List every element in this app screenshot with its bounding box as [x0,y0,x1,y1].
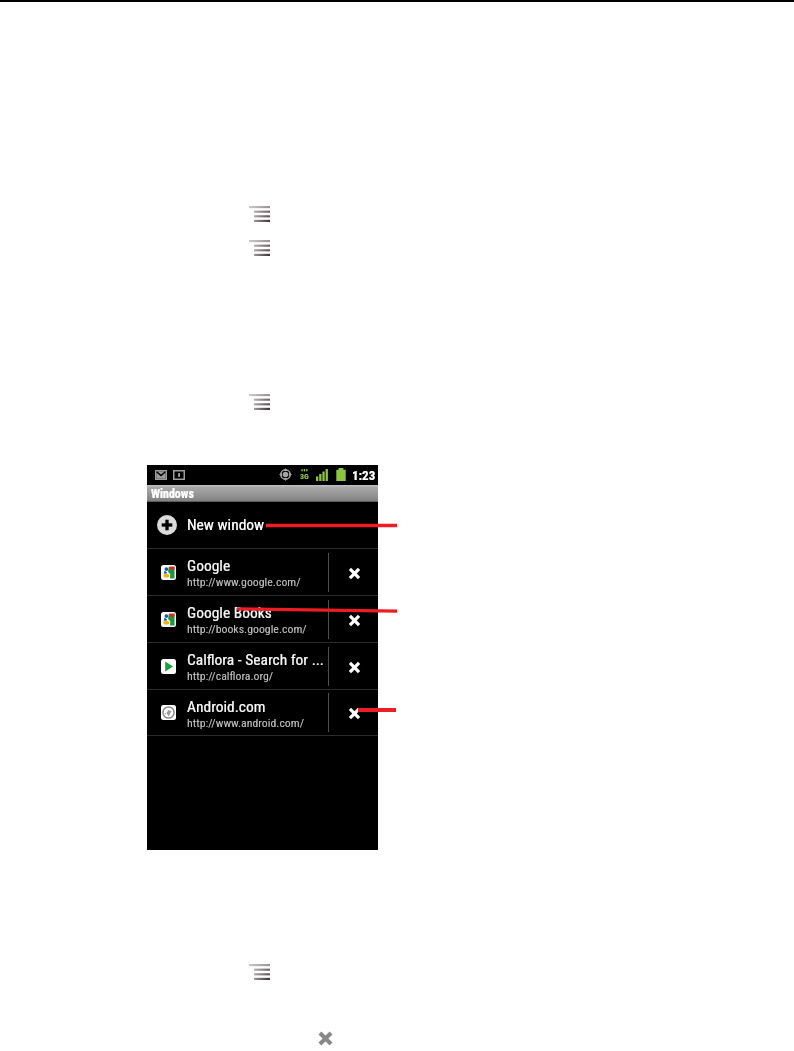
button[interactable]: Close window [328,596,378,642]
staticText: http://www.google.com/ [187,575,301,589]
button[interactable]: Calflora - Search for ... [147,643,378,689]
button[interactable]: Android.com [147,690,378,735]
staticText: 1:23 [352,468,376,483]
staticText: Calflora - Search for ... [187,651,324,669]
staticText: http://books.google.com/ [187,622,307,636]
staticText: http://www.android.com/ [187,716,305,730]
staticText: New window [187,516,265,534]
staticText: Android.com [187,698,266,716]
staticText: 3G [300,472,309,481]
button[interactable]: Close window [328,643,378,689]
staticText: Google [187,557,231,575]
button[interactable]: Close window [328,690,378,735]
button[interactable]: Close window [328,549,378,595]
button[interactable]: Google Books [147,596,378,642]
button[interactable]: New window [147,502,378,548]
staticText: Windows [151,487,194,501]
staticText: http://calflora.org/ [187,669,274,683]
button[interactable]: Google [147,549,378,595]
staticText: Google Books [187,604,272,622]
